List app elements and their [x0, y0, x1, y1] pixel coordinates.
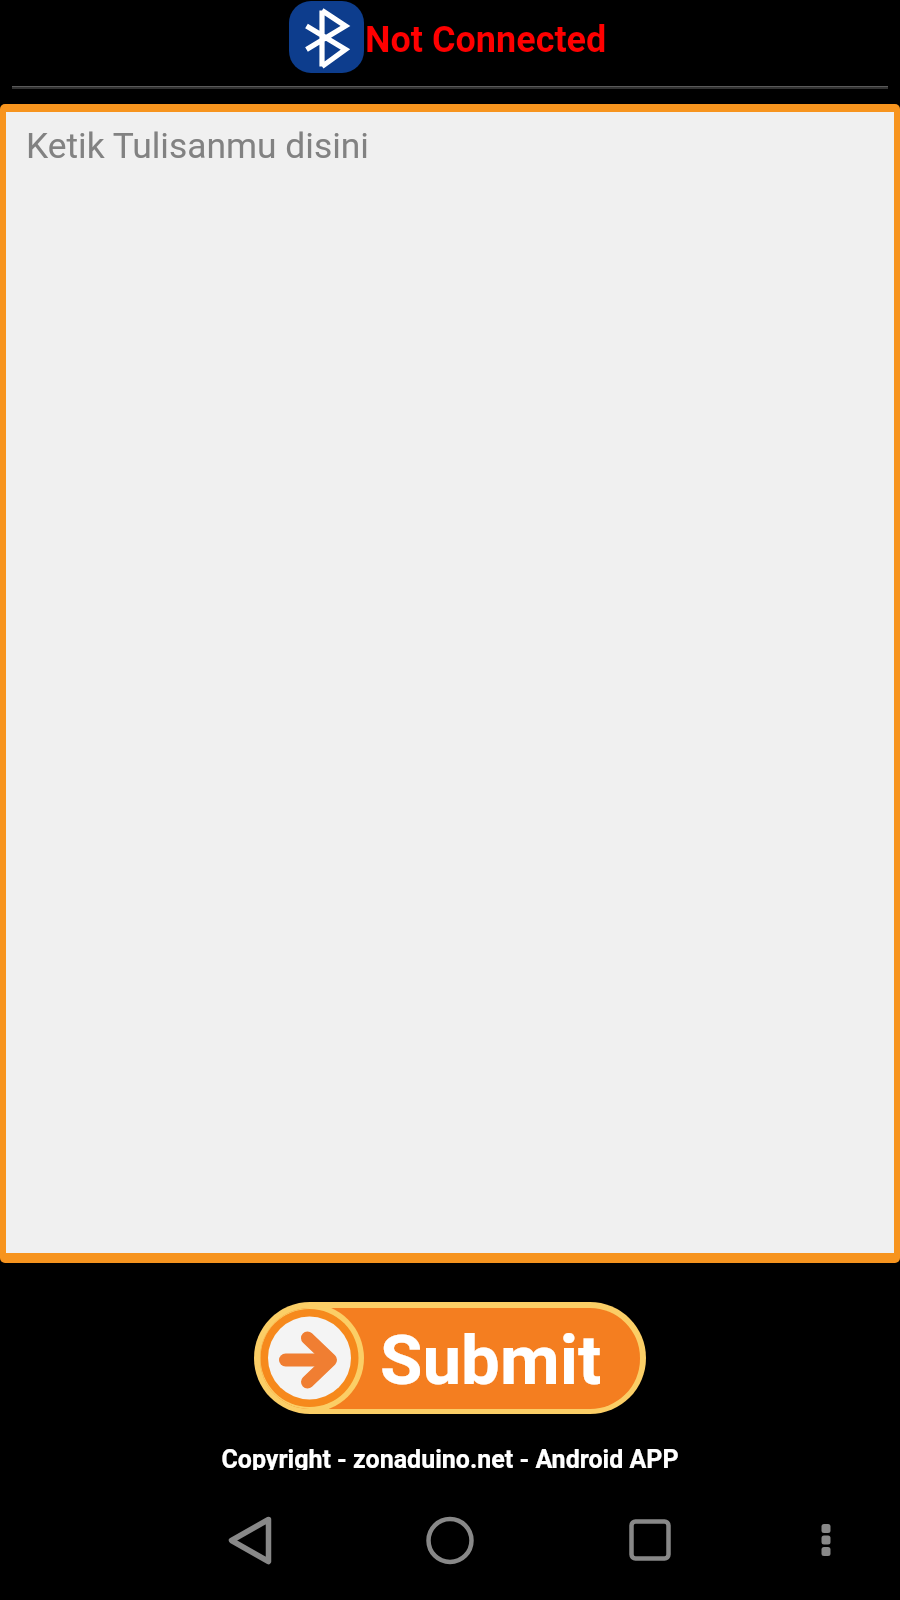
button[interactable]: More options — [781, 1495, 871, 1585]
button[interactable]: Submit — [254, 1302, 646, 1414]
staticText: Submit — [380, 1320, 602, 1401]
button[interactable]: Back — [205, 1495, 295, 1585]
staticText: Not Connected — [365, 19, 607, 61]
staticText: Copyright - zonaduino.net - Android APP — [0, 1445, 900, 1474]
button[interactable]: Bluetooth status: Not Connected — [289, 1, 607, 73]
button[interactable]: Recent apps — [605, 1495, 695, 1585]
button[interactable]: Ketik Tulisanmu disini — [0, 104, 900, 1263]
staticText: Ketik Tulisanmu disini — [26, 125, 369, 166]
button[interactable]: Home — [405, 1495, 495, 1585]
